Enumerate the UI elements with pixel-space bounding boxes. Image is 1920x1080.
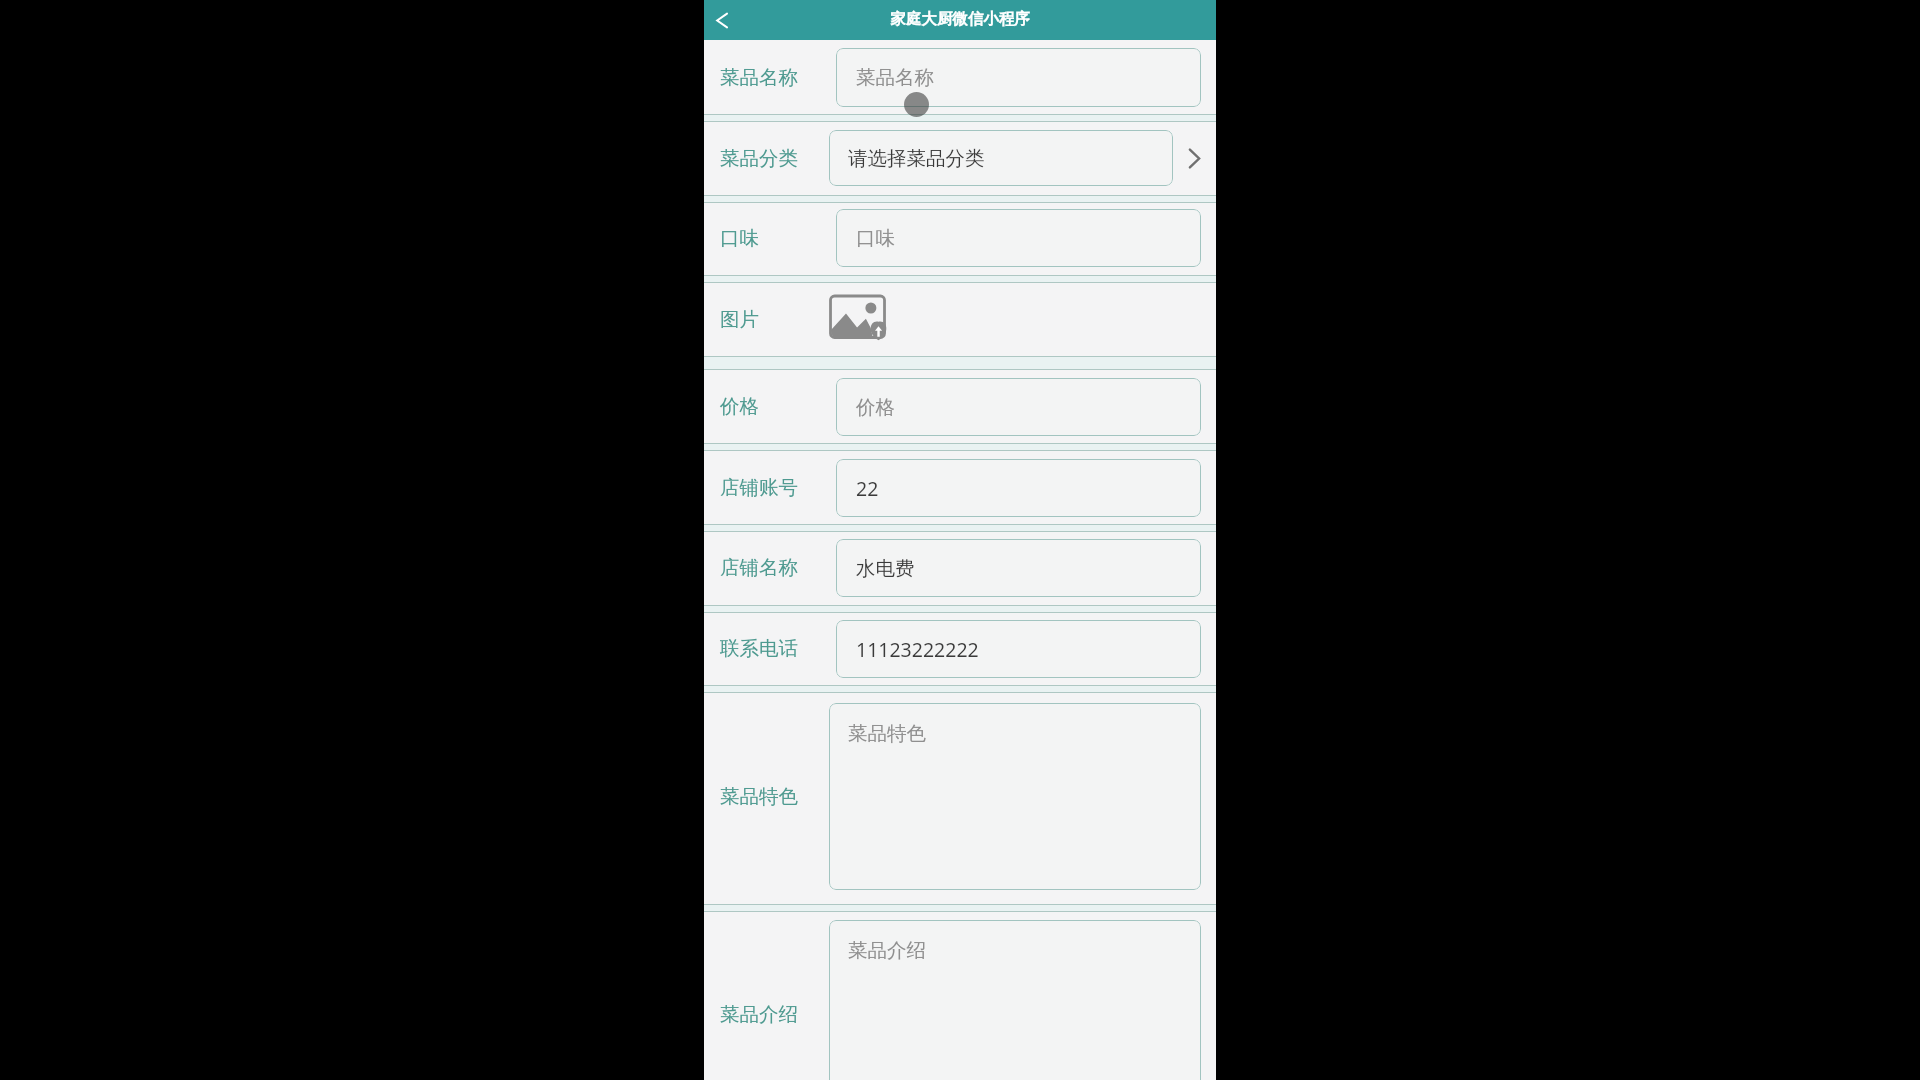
button[interactable] bbox=[704, 369, 1216, 443]
button[interactable] bbox=[704, 911, 1216, 1080]
button[interactable]: 口味 bbox=[836, 209, 1201, 267]
button[interactable]: 11123222222 bbox=[836, 620, 1201, 678]
button[interactable]: 菜品名称 bbox=[836, 48, 1201, 107]
staticText: 图片 bbox=[720, 307, 759, 332]
staticText: 店铺账号 bbox=[720, 475, 798, 500]
staticText: 11123222222 bbox=[856, 636, 979, 663]
button[interactable]: Select category bbox=[1179, 139, 1209, 177]
staticText: 家庭大厨微信小程序 bbox=[890, 9, 1030, 29]
staticText: 口味 bbox=[720, 226, 759, 251]
staticText: 价格 bbox=[856, 395, 895, 420]
button[interactable]: 请选择菜品分类 bbox=[829, 130, 1173, 186]
button[interactable] bbox=[704, 692, 1216, 904]
button[interactable] bbox=[704, 450, 1216, 524]
staticText: 菜品介绍 bbox=[720, 1002, 798, 1027]
staticText: 菜品名称 bbox=[720, 65, 798, 90]
staticText: 22 bbox=[856, 475, 879, 502]
staticText: 菜品名称 bbox=[856, 65, 934, 90]
staticText: 菜品特色 bbox=[720, 784, 798, 809]
button[interactable]: 价格 bbox=[836, 378, 1201, 436]
staticText: 店铺名称 bbox=[720, 555, 798, 580]
staticText: 菜品特色 bbox=[848, 721, 926, 746]
staticText: 请选择菜品分类 bbox=[848, 146, 985, 171]
button[interactable]: Upload picture bbox=[829, 291, 887, 341]
staticText: 菜品分类 bbox=[720, 146, 798, 171]
button[interactable] bbox=[704, 40, 1216, 114]
button[interactable] bbox=[704, 283, 1216, 356]
button[interactable] bbox=[704, 202, 1216, 275]
button[interactable]: Back bbox=[703, 0, 741, 40]
button[interactable] bbox=[704, 531, 1216, 605]
button[interactable] bbox=[704, 612, 1216, 685]
button[interactable] bbox=[704, 122, 1216, 195]
staticText: 菜品介绍 bbox=[848, 938, 926, 963]
button[interactable]: 水电费 bbox=[836, 539, 1201, 597]
button[interactable]: 22 bbox=[836, 459, 1201, 517]
staticText: 口味 bbox=[856, 226, 895, 251]
button[interactable]: 菜品介绍 bbox=[829, 920, 1201, 1080]
staticText: 价格 bbox=[720, 394, 759, 419]
button[interactable]: 菜品特色 bbox=[829, 703, 1201, 890]
staticText: 联系电话 bbox=[720, 636, 798, 661]
staticText: 水电费 bbox=[856, 556, 915, 581]
